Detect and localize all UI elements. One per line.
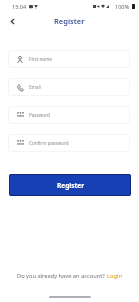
button[interactable]: Email [8,78,130,96]
staticText: Password [29,112,50,118]
button[interactable]: Back [5,14,20,29]
staticText: Confirm password [29,140,69,146]
staticText: Register [57,181,85,190]
staticText: Login [107,272,122,280]
button[interactable]: Password [8,106,130,124]
staticText: Email [29,84,41,90]
button[interactable]: Login [107,272,122,280]
staticText: Do you already have an account? [17,272,107,280]
staticText: Register [54,16,85,26]
button[interactable]: First name [8,50,130,68]
staticText: First name [29,56,52,62]
button[interactable]: Confirm password [8,134,130,152]
staticText: 15:04 [12,3,27,10]
button[interactable]: Register [9,174,131,196]
staticText: 100% [115,3,130,10]
